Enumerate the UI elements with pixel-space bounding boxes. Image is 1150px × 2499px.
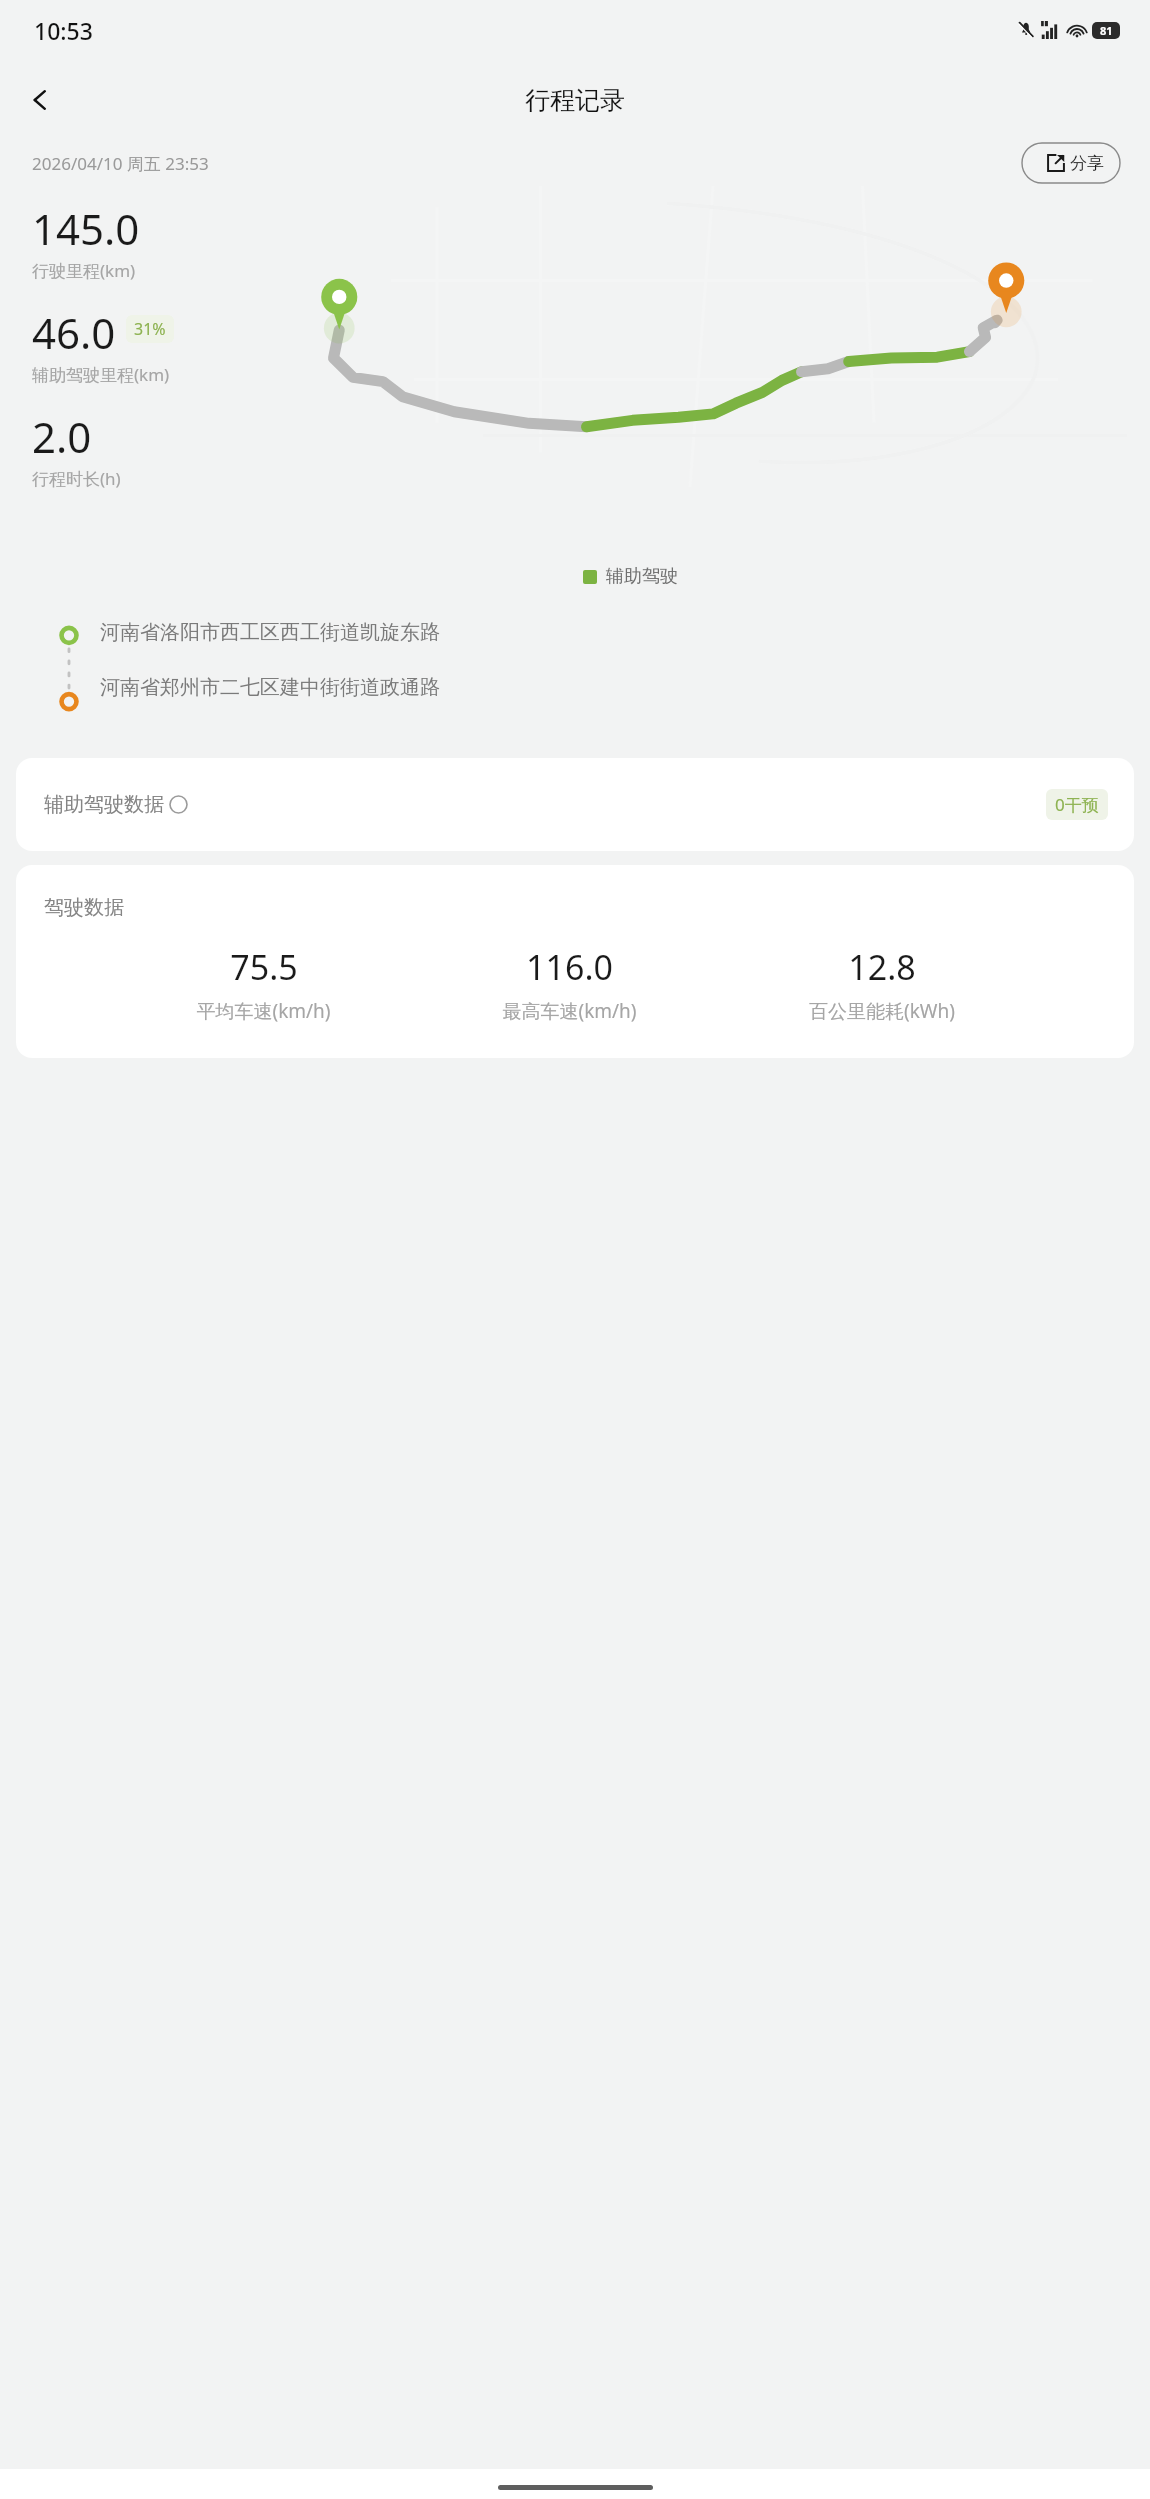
staticText: 行程记录: [525, 85, 625, 116]
staticText: 10:53: [34, 15, 93, 46]
staticText: 河南省洛阳市西工区西工街道凯旋东路: [100, 620, 440, 645]
staticText: 116.0: [526, 944, 613, 990]
staticText: 辅助驾驶里程(km): [32, 363, 170, 386]
staticText: 81: [1100, 23, 1113, 38]
staticText: 河南省郑州市二七区建中街街道政通路: [100, 675, 440, 700]
staticText: 最高车速(km/h): [502, 998, 637, 1024]
staticText: 46.0: [32, 304, 116, 361]
staticText: 0干预: [1055, 793, 1099, 816]
staticText: 2026/04/10 周五 23:53: [32, 152, 209, 175]
staticText: 31%: [134, 318, 166, 340]
staticText: 12.8: [848, 944, 916, 990]
staticText: 分享: [1070, 153, 1104, 174]
staticText: 辅助驾驶数据: [44, 792, 164, 817]
staticText: 2.0: [32, 408, 92, 465]
staticText: 行程时长(h): [32, 467, 121, 490]
staticText: 百公里能耗(kWh): [809, 998, 955, 1024]
staticText: 145.0: [32, 200, 140, 257]
button[interactable]: 驾驶数据: [16, 865, 1134, 1058]
button[interactable]: 辅助驾驶数据: [16, 758, 1134, 851]
staticText: 驾驶数据: [44, 895, 124, 920]
staticText: 平均车速(km/h): [196, 998, 331, 1024]
button[interactable]: Back: [14, 74, 66, 126]
staticText: 75.5: [230, 944, 298, 990]
button[interactable]: 分享: [1031, 143, 1120, 183]
staticText: 行驶里程(km): [32, 259, 136, 282]
staticText: 辅助驾驶: [606, 565, 678, 588]
